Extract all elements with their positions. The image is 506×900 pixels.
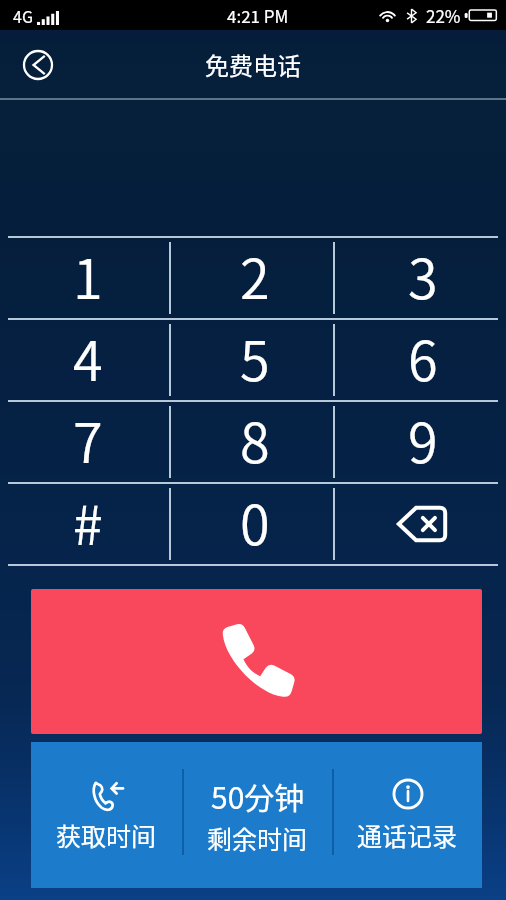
staticText: 1	[73, 236, 103, 314]
other: Backspace	[396, 505, 448, 543]
button[interactable]: 获取时间	[31, 742, 182, 888]
staticText: 4	[73, 318, 103, 396]
staticText: 3	[408, 236, 438, 314]
button[interactable]: 1	[0, 238, 168, 318]
staticText: 获取时间	[56, 817, 157, 853]
staticText: 7	[73, 400, 103, 478]
staticText: 免费电话	[205, 47, 301, 82]
button[interactable]: 6	[337, 320, 506, 400]
button[interactable]: 8	[168, 402, 337, 482]
staticText: 0	[240, 482, 270, 560]
button[interactable]: Back	[14, 41, 62, 89]
staticText: #	[73, 482, 103, 560]
staticText: 4:21 PM	[227, 3, 289, 28]
staticText: 剩余时间	[207, 820, 308, 856]
button[interactable]: 5	[168, 320, 337, 400]
button[interactable]: 50分钟	[182, 742, 332, 888]
staticText: 8	[240, 400, 270, 478]
button[interactable]: 2	[168, 238, 337, 318]
button[interactable]: #	[0, 484, 168, 564]
staticText: 6	[408, 318, 438, 396]
button[interactable]: 3	[337, 238, 506, 318]
button[interactable]: 0	[168, 484, 337, 564]
button[interactable]: 4	[0, 320, 168, 400]
staticText: 通话记录	[357, 817, 458, 853]
staticText: 50分钟	[211, 774, 305, 817]
staticText: 9	[408, 400, 438, 478]
staticText: 2	[240, 236, 270, 314]
staticText: 22%	[426, 3, 461, 28]
button[interactable]: 7	[0, 402, 168, 482]
button[interactable]: Backspace	[337, 484, 506, 564]
staticText: 5	[240, 318, 270, 396]
button[interactable]: Call	[31, 589, 482, 734]
button[interactable]: 9	[337, 402, 506, 482]
staticText: 4G	[13, 4, 33, 27]
button[interactable]: 通话记录	[332, 742, 482, 888]
